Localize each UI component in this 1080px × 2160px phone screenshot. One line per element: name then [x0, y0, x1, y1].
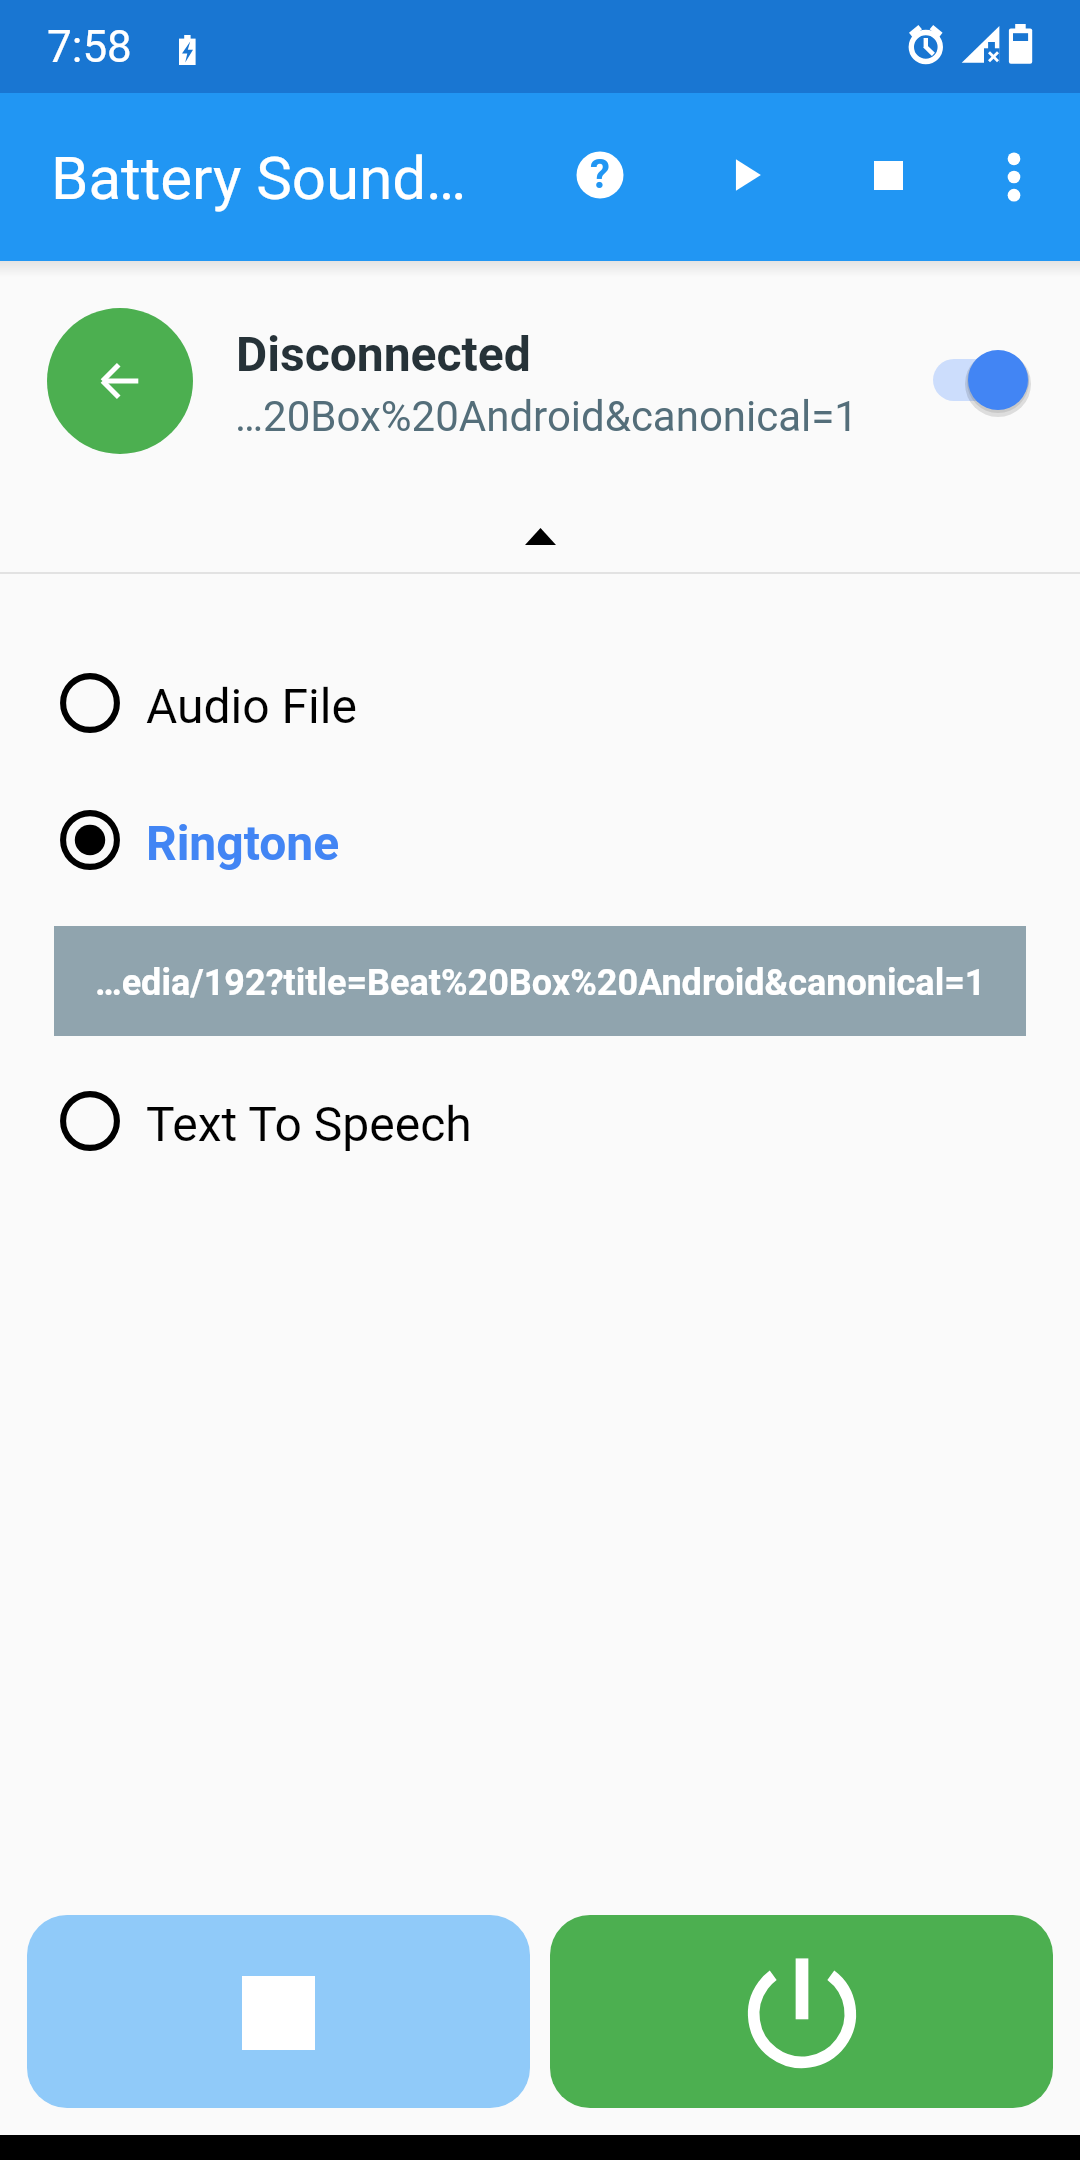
staticText: …20Box%20Android&canonical=1 — [235, 392, 858, 441]
staticText: Audio File — [146, 678, 357, 734]
button[interactable]: Audio File — [0, 662, 1080, 744]
staticText: ? — [590, 151, 610, 198]
button[interactable]: Ringtone — [0, 799, 1080, 881]
button[interactable]: Enable sound — [920, 340, 1040, 420]
staticText: …edia/192?title=Beat%20Box%20Android&can… — [95, 962, 986, 1004]
button[interactable]: Disconnected — [0, 262, 1080, 498]
staticText: Ringtone — [146, 815, 340, 871]
button[interactable]: Play — [691, 120, 801, 230]
staticText: Disconnected — [236, 326, 531, 382]
button[interactable]: Text To Speech — [0, 1080, 1080, 1162]
button[interactable]: Stop — [27, 1915, 530, 2108]
staticText: Battery Sound… — [51, 143, 467, 213]
button[interactable]: Power — [550, 1915, 1053, 2108]
button[interactable]: Collapse — [470, 500, 610, 570]
staticText: 7:58 — [47, 21, 132, 73]
button[interactable]: Help — [545, 120, 655, 230]
staticText: Text To Speech — [146, 1096, 472, 1152]
button[interactable]: Stop — [833, 120, 943, 230]
button[interactable]: …edia/192?title=Beat%20Box%20Android&can… — [54, 926, 1026, 1036]
button[interactable]: More options — [959, 120, 1069, 230]
